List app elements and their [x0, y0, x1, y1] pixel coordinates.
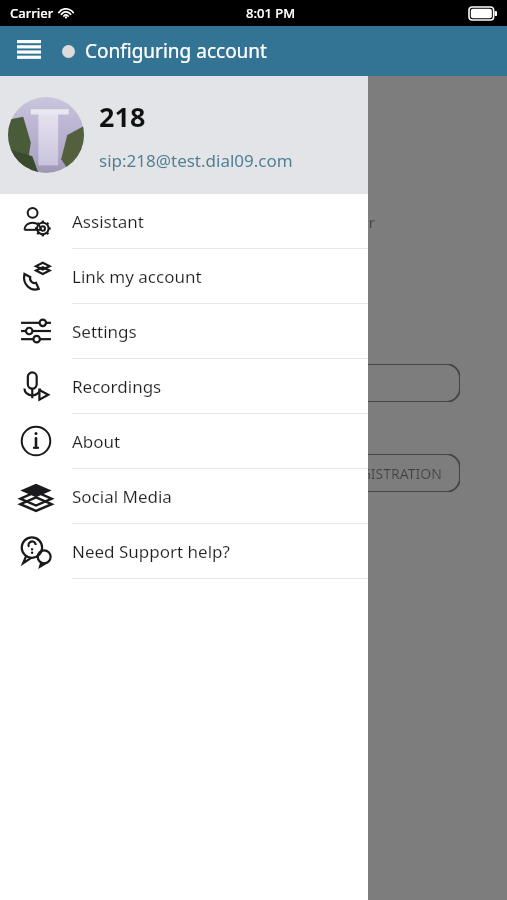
- staticText: Carrier: [10, 4, 54, 22]
- staticText: Assistant: [72, 210, 144, 233]
- button[interactable]: About: [0, 414, 368, 468]
- button[interactable]: [46, 364, 460, 402]
- staticText: About: [72, 430, 121, 453]
- staticText: Need Support help?: [72, 540, 230, 563]
- button[interactable]: Settings: [0, 304, 368, 358]
- button[interactable]: Need Support help?: [0, 524, 368, 578]
- staticText: Social Media: [72, 485, 172, 508]
- button[interactable]: Assistant: [0, 194, 368, 248]
- staticText: Recordings: [72, 375, 162, 398]
- staticText: sip:218@test.dial09.com: [99, 149, 293, 172]
- button[interactable]: Recordings: [0, 359, 368, 413]
- staticText: Configuring account: [85, 38, 267, 64]
- staticText: ACCEPT AND CONTINUE REGISTRATION: [182, 464, 442, 483]
- staticText: Settings: [72, 320, 137, 343]
- staticText: Link my account: [72, 265, 202, 288]
- button[interactable]: Social Media: [0, 469, 368, 523]
- staticText: 218: [99, 98, 146, 135]
- button[interactable]: ACCEPT AND CONTINUE REGISTRATION: [46, 454, 460, 492]
- staticText: Thank you for choosing our app. We will …: [28, 212, 376, 232]
- staticText: 8:01 PM: [246, 4, 296, 22]
- staticText: By continuing you accept the services': [28, 268, 300, 288]
- button[interactable]: 218: [0, 76, 368, 194]
- button[interactable]: Link my account: [0, 249, 368, 303]
- button[interactable]: Open navigation menu: [8, 30, 50, 72]
